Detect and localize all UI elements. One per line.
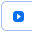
button[interactable]: Play video — [1, 1, 32, 30]
